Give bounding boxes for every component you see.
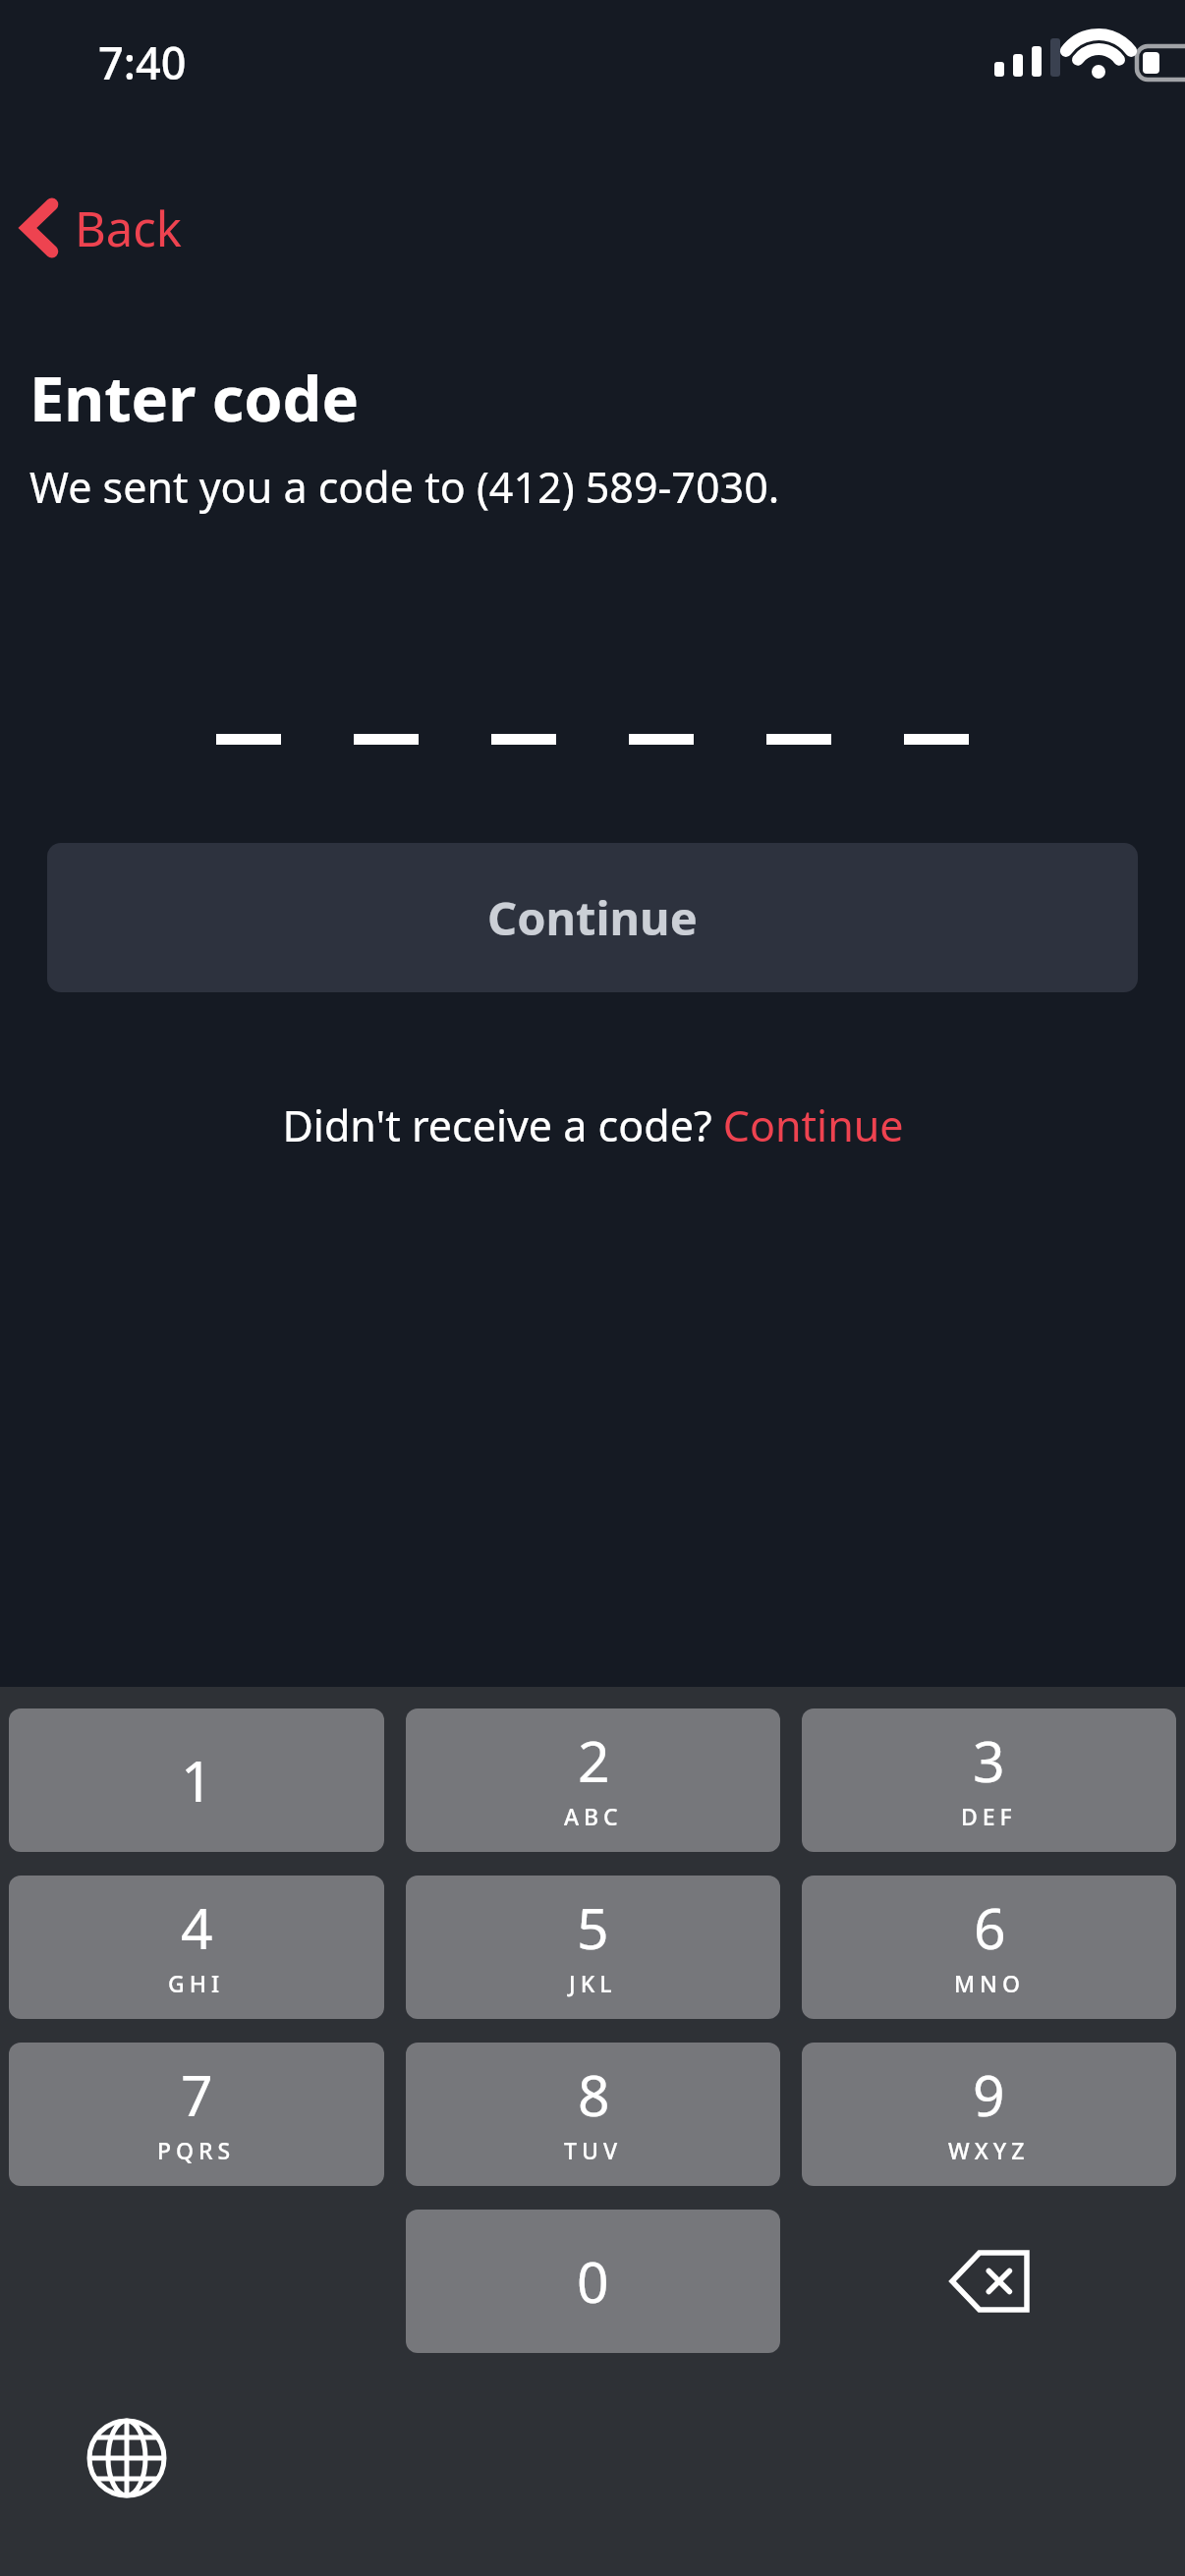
button[interactable]: 9 <box>802 2043 1176 2186</box>
staticText: 8 <box>578 2056 610 2133</box>
staticText: 1 <box>181 1742 213 1819</box>
button[interactable]: 0 <box>406 2210 780 2353</box>
staticText: WXYZ <box>948 2135 1030 2165</box>
button[interactable]: 1 <box>9 1708 384 1852</box>
button[interactable]: Change keyboard language <box>69 2400 185 2516</box>
button[interactable]: 2 <box>406 1708 780 1852</box>
button[interactable]: 6 <box>802 1876 1176 2019</box>
staticText: 3 <box>973 1722 1005 1799</box>
staticText: Continue <box>487 886 698 949</box>
staticText: JKL <box>569 1968 617 1998</box>
button[interactable]: Back <box>14 177 193 279</box>
staticText: ABC <box>564 1801 623 1831</box>
staticText: 6 <box>974 1889 1006 1966</box>
button[interactable]: Didn't receive a code? Continue <box>268 1089 918 1162</box>
staticText: 0 <box>577 2243 609 2320</box>
staticText: 2 <box>578 1722 610 1799</box>
staticText: We sent you a code to (412) 589-7030. <box>29 458 780 516</box>
button[interactable]: 7 <box>9 2043 384 2186</box>
staticText: PQRS <box>157 2135 236 2165</box>
staticText: TUV <box>564 2135 623 2165</box>
button[interactable]: 4 <box>9 1876 384 2019</box>
button[interactable]: Continue <box>47 843 1138 992</box>
button[interactable]: 3 <box>802 1708 1176 1852</box>
staticText: GHI <box>168 1968 225 1998</box>
staticText: Didn't receive a code? Continue <box>282 1096 904 1154</box>
staticText: 9 <box>973 2056 1005 2133</box>
staticText: Enter code <box>29 356 360 440</box>
staticText: 7:40 <box>98 32 187 92</box>
staticText: 7 <box>181 2056 213 2133</box>
staticText: 5 <box>577 1889 609 1966</box>
button[interactable]: 8 <box>406 2043 780 2186</box>
button[interactable]: Backspace <box>802 2210 1176 2353</box>
staticText: MNO <box>954 1968 1025 1998</box>
staticText: Back <box>75 196 183 261</box>
staticText: 4 <box>181 1889 213 1966</box>
staticText: DEF <box>961 1801 1017 1831</box>
button[interactable]: 5 <box>406 1876 780 2019</box>
